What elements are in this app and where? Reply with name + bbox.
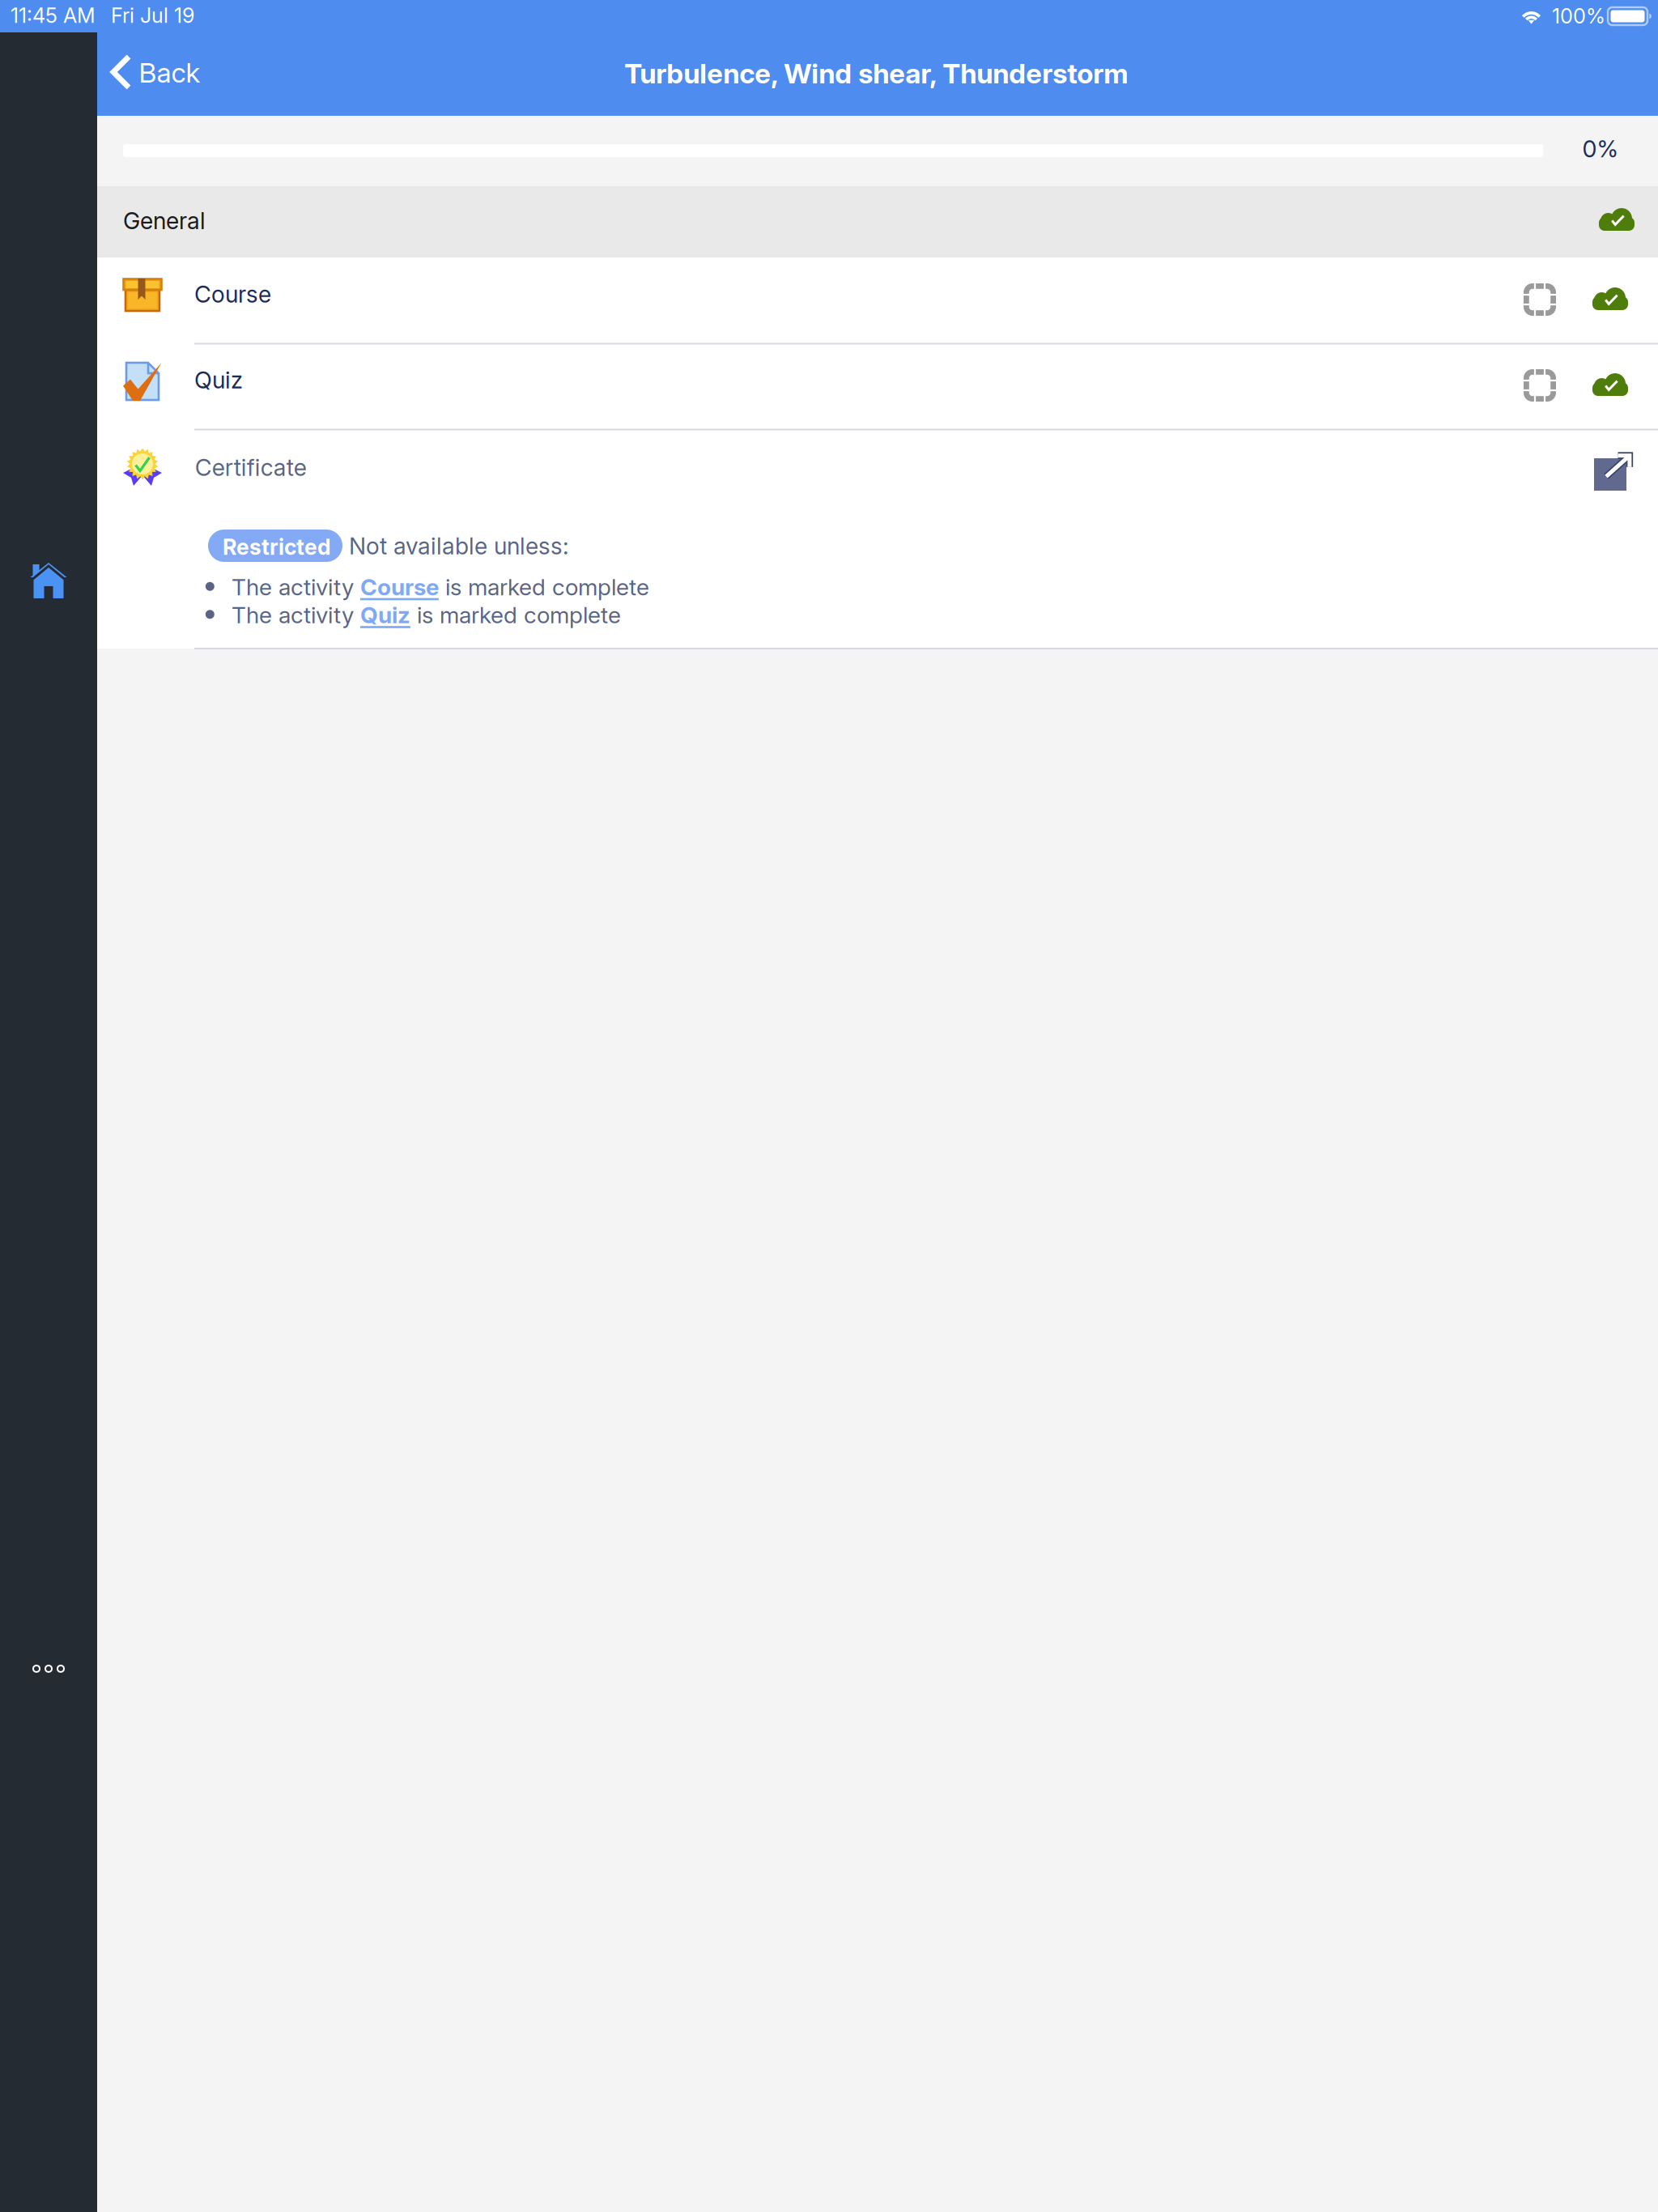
staticText: Quiz bbox=[194, 366, 243, 394]
staticText: is marked complete bbox=[439, 573, 649, 601]
button[interactable]: More bbox=[0, 32, 31, 39]
staticText: Not available unless: bbox=[349, 532, 568, 560]
staticText: Restricted bbox=[223, 534, 331, 560]
staticText: Fri Jul 19 bbox=[111, 3, 194, 28]
staticText: Certificate bbox=[195, 453, 307, 481]
staticText: Quiz bbox=[360, 601, 410, 629]
staticText: Turbulence, Wind shear, Thunderstorm bbox=[624, 57, 1128, 90]
staticText: Back bbox=[139, 56, 200, 89]
button[interactable]: Home bbox=[0, 32, 36, 69]
staticText: is marked complete bbox=[410, 601, 621, 629]
staticText: The activity bbox=[231, 601, 360, 629]
button[interactable]: Certificate bbox=[97, 429, 1658, 497]
button[interactable]: Back bbox=[97, 32, 215, 116]
staticText: The activity bbox=[231, 573, 360, 601]
button[interactable]: Course bbox=[97, 257, 1658, 343]
staticText: Course bbox=[194, 280, 271, 308]
staticText: General bbox=[123, 207, 206, 235]
staticText: 11:45 AM bbox=[11, 3, 96, 28]
button[interactable]: Quiz bbox=[97, 343, 1658, 429]
staticText: 0% bbox=[1582, 135, 1618, 163]
staticText: 100% bbox=[1552, 4, 1605, 29]
staticText: Course bbox=[360, 573, 439, 601]
